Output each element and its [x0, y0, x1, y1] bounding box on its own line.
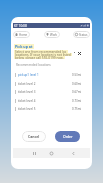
staticText: locations. If your location is not liste… — [15, 53, 71, 56]
button[interactable]: pickup1 level 1 — [13, 71, 90, 78]
button[interactable]: Home — [13, 31, 30, 38]
staticText: Pick up at — [15, 44, 33, 49]
button[interactable]: Work — [44, 31, 60, 38]
button[interactable]: ticket level 4 — [13, 97, 90, 104]
staticText: ticket level 4 — [18, 99, 72, 103]
staticText: 0.73mi — [72, 99, 82, 103]
staticText: ticket level 2 — [18, 82, 72, 86]
staticText: Select one from recommended loc — [15, 50, 67, 53]
button[interactable]: ticket level 3 — [13, 88, 90, 95]
staticText: 0.67mi — [72, 90, 82, 94]
button[interactable]: Home — [46, 148, 56, 158]
button[interactable]: Order — [55, 131, 80, 142]
staticText: 0.53mi — [72, 73, 82, 77]
staticText: ticket level 3 — [18, 90, 72, 94]
staticText: Home — [19, 33, 28, 37]
staticText: KT 10:08 — [14, 24, 27, 28]
staticText: ticket level 5 — [18, 107, 72, 111]
staticText: Order — [63, 134, 73, 139]
button[interactable]: ticket level 5 — [13, 105, 90, 112]
staticText: Recommended locations — [16, 63, 51, 67]
staticText: below, please call 555-0199 now. — [15, 56, 64, 59]
staticText: Cancel — [28, 134, 40, 139]
button[interactable]: Close — [77, 51, 82, 56]
staticText: Work — [50, 33, 58, 37]
staticText: 0.75mi — [72, 107, 82, 111]
staticText: Status — [79, 33, 88, 37]
staticText: pickup1 level 1 — [18, 73, 72, 77]
button[interactable]: Cancel — [22, 131, 46, 142]
button[interactable]: Status — [73, 31, 90, 38]
staticText: 0.60mi — [72, 82, 82, 86]
button[interactable]: Back — [68, 148, 78, 158]
button[interactable]: Recents — [29, 148, 39, 158]
button[interactable]: ticket level 2 — [13, 80, 90, 87]
